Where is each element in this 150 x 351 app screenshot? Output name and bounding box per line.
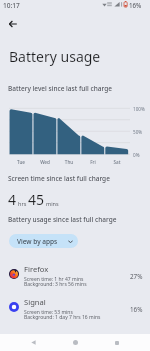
staticText: Background: 1 day 7 hrs 16 mins (24, 314, 101, 321)
staticText: 0% (133, 152, 140, 158)
staticText: Battery usage since last full charge (8, 215, 117, 224)
staticText: Tue (9, 159, 33, 165)
staticText: Fri (81, 159, 105, 165)
staticText: View by apps (17, 237, 58, 246)
staticText: Screen time: 53 mins (24, 309, 73, 316)
button[interactable]: Signal (0, 293, 150, 326)
staticText: 10:17 (3, 1, 20, 10)
staticText: Background: 3 hrs 56 mins (24, 281, 87, 288)
staticText: Battery usage (9, 47, 101, 66)
staticText: 50% (133, 129, 143, 135)
button[interactable]: Back (4, 15, 22, 33)
staticText: Signal (24, 297, 46, 307)
staticText: Battery level since last full charge (8, 84, 112, 93)
staticText: 16% (129, 1, 142, 9)
button[interactable]: Firefox (0, 260, 150, 293)
staticText: 16% (130, 305, 143, 314)
button[interactable]: View by apps (9, 234, 78, 248)
staticText: 100% (133, 106, 145, 112)
staticText: 4 (8, 190, 17, 209)
staticText: mins (46, 200, 59, 207)
staticText: Firefox (24, 264, 49, 274)
staticText: Screen time since last full charge (8, 174, 110, 183)
button[interactable]: Back (24, 334, 42, 351)
staticText: Thu (57, 159, 81, 165)
button[interactable]: Home (66, 334, 84, 351)
staticText: Wed (33, 159, 57, 165)
staticText: 27% (130, 272, 143, 281)
staticText: hrs (18, 200, 27, 207)
staticText: 45 (28, 190, 45, 209)
staticText: Sat (105, 159, 129, 165)
staticText: Screen time: 1 hr 47 mins (24, 276, 84, 283)
button[interactable]: Recents (108, 334, 126, 351)
